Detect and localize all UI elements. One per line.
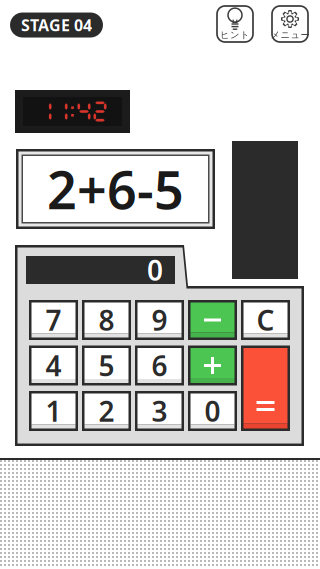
staticText: STAGE 04 [21, 14, 92, 36]
button[interactable]: Minus [188, 300, 237, 340]
button[interactable]: メニュー [272, 6, 308, 42]
staticText: 7 [45, 301, 61, 339]
staticText: C [256, 301, 274, 339]
button[interactable]: 1 [29, 391, 78, 431]
staticText: 5 [98, 347, 114, 384]
button[interactable]: ヒント [217, 6, 253, 42]
staticText: メニュー [270, 29, 309, 41]
staticText: 4 [45, 347, 61, 384]
staticText: 6 [151, 347, 167, 384]
staticText: 3 [151, 392, 167, 430]
button[interactable]: 5 [82, 345, 131, 385]
staticText: 2 [98, 392, 114, 430]
button[interactable]: STAGE 04 [10, 12, 103, 37]
button[interactable]: 3 [135, 391, 184, 431]
staticText: 0 [147, 251, 163, 289]
button[interactable]: 8 [82, 300, 131, 340]
staticText: 2+6-5 [47, 154, 184, 224]
staticText: 9 [151, 301, 167, 339]
button[interactable]: 2 [82, 391, 131, 431]
button[interactable]: C [241, 300, 290, 340]
staticText: ヒント [220, 29, 250, 41]
button[interactable]: 9 [135, 300, 184, 340]
staticText: 1 [45, 392, 61, 430]
button[interactable]: 7 [29, 300, 78, 340]
button[interactable]: Equals [241, 345, 290, 431]
staticText: 8 [98, 301, 114, 339]
button[interactable]: 0 [188, 391, 237, 431]
button[interactable]: Plus [188, 345, 237, 385]
button[interactable]: 4 [29, 345, 78, 385]
staticText: 0 [204, 392, 220, 430]
button[interactable]: 6 [135, 345, 184, 385]
